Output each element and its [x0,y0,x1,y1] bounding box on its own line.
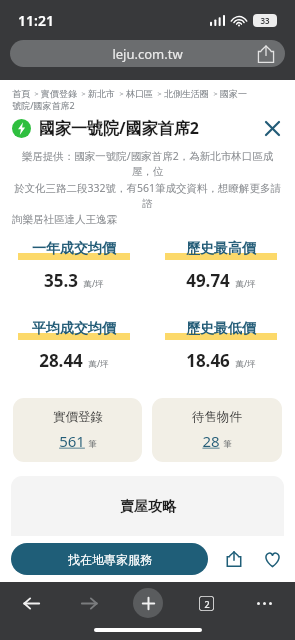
staticText: 林口區 [126,88,153,99]
staticText: 國家一 [220,88,247,99]
staticText: leju.com.tw [112,45,183,63]
staticText: 歷史最低價 [186,320,256,338]
staticText: 首頁 [12,88,30,99]
staticText: ＞ [153,89,164,99]
button[interactable]: 北側生活圈 [164,88,209,99]
button[interactable]: Back [16,588,46,618]
button[interactable]: Close [261,117,283,139]
staticText: 歷史最高價 [186,240,256,258]
button[interactable]: 首頁 [12,88,30,99]
staticText: 萬/坪 [235,358,256,370]
button[interactable]: 待售物件 [152,398,282,462]
staticText: 35.3 [44,269,78,292]
button[interactable]: 實價登錄 [41,88,77,99]
staticText: 樂居提供：國家一號院/國家首席2，為新北市林口區成屋，位 [12,149,283,178]
button[interactable]: Tabs [191,588,221,618]
button[interactable]: 國家一 [220,88,247,99]
staticText: 33 [260,15,270,26]
staticText: 561 [59,431,85,451]
staticText: 號院/國家首席2 [12,99,75,111]
staticText: 實價登錄 [53,409,103,425]
staticText: ＞ [30,89,41,99]
button[interactable]: 平均成交均價 [0,320,147,372]
button[interactable]: Address bar [10,40,285,67]
staticText: ＞ [115,89,126,99]
staticText: 49.74 [186,269,230,292]
staticText: 28.44 [39,349,83,372]
button[interactable]: 實價登錄 [13,398,142,462]
staticText: 筆 [88,439,97,450]
staticText: 國家一號院/國家首席2 [39,117,199,139]
staticText: 11:21 [18,11,54,30]
staticText: 平均成交均價 [32,320,116,338]
staticText: 萬/坪 [83,278,104,290]
button[interactable]: Favorite [260,547,284,571]
button[interactable]: New tab [133,588,163,618]
staticText: 找在地專家服務 [68,552,152,567]
staticText: ＞ [77,89,88,99]
staticText: 筆 [223,439,232,450]
button[interactable]: Share page [257,45,275,63]
staticText: 詢樂居社區達人王逸霖 [12,213,117,226]
staticText: 萬/坪 [88,358,109,370]
staticText: 於文化三路二段332號，有561筆成交資料，想瞭解更多請諮 [12,181,283,210]
button[interactable]: Forward [74,588,104,618]
staticText: 28 [202,431,220,451]
button[interactable]: 林口區 [126,88,153,99]
button[interactable]: 賣屋攻略 [11,476,284,554]
staticText: 一年成交均價 [32,240,116,258]
staticText: 新北市 [88,88,115,99]
button[interactable]: 一年成交均價 [0,240,147,292]
staticText: 18.46 [186,349,230,372]
button[interactable]: 新北市 [88,88,115,99]
staticText: 實價登錄 [41,88,77,99]
staticText: 北側生活圈 [164,88,209,99]
button[interactable]: 歷史最低價 [147,320,295,372]
staticText: 2 [204,598,210,610]
staticText: 萬/坪 [235,278,256,290]
staticText: 待售物件 [192,409,242,425]
staticText: 賣屋攻略 [120,498,176,516]
button[interactable]: More options [249,588,279,618]
button[interactable]: 歷史最高價 [147,240,295,292]
button[interactable]: 找在地專家服務 [11,543,208,575]
button[interactable]: Share [222,547,246,571]
staticText: ＞ [209,89,220,99]
